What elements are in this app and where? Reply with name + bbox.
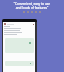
button[interactable] (5, 38, 34, 53)
staticText: “Convenient, easy to use (0, 2, 64, 6)
button[interactable] (5, 61, 34, 66)
staticText: and loads of features” (0, 6, 64, 10)
button[interactable] (3, 22, 35, 26)
